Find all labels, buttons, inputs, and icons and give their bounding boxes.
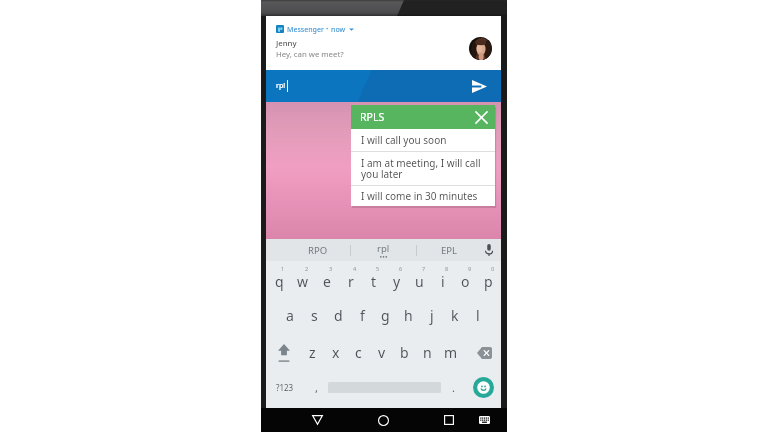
button[interactable]	[328, 369, 441, 406]
staticText: h	[404, 306, 413, 325]
staticText: q	[275, 272, 284, 291]
staticText: z	[309, 343, 316, 362]
staticText: 2	[305, 265, 309, 272]
staticText: u	[415, 272, 424, 291]
button[interactable]: 7	[408, 261, 431, 297]
staticText: x	[332, 343, 340, 362]
button[interactable]: Switch keyboard	[466, 408, 502, 432]
staticText: v	[378, 343, 386, 362]
button[interactable]: a	[278, 297, 302, 334]
staticText: a	[286, 306, 294, 325]
staticText: ,	[315, 380, 318, 395]
button[interactable]: ,	[304, 369, 328, 406]
staticText: w	[297, 272, 309, 291]
staticText: r	[348, 272, 354, 291]
staticText: 8	[445, 265, 449, 272]
button[interactable]: s	[302, 297, 326, 334]
button[interactable]: Messenger	[266, 16, 501, 70]
button[interactable]: rpl	[266, 70, 501, 102]
staticText: 4	[353, 265, 357, 272]
staticText: .	[452, 380, 455, 395]
button[interactable]: 2	[291, 261, 315, 297]
staticText: m	[444, 343, 458, 362]
staticText: Hey, can we meet?	[276, 49, 344, 60]
staticText: RPLS	[360, 110, 385, 124]
button[interactable]: RPO	[292, 239, 344, 261]
staticText: i	[441, 272, 445, 291]
button[interactable]: 3	[315, 261, 339, 297]
staticText: I will come in 30 minutes	[361, 189, 478, 203]
button[interactable]: 1	[267, 261, 291, 297]
staticText: 7	[422, 265, 426, 272]
button[interactable]: z	[301, 334, 324, 371]
button[interactable]: ?123	[266, 369, 304, 406]
staticText: c	[355, 343, 362, 362]
button[interactable]: rpl	[357, 239, 409, 261]
button[interactable]: j	[420, 297, 443, 334]
staticText: y	[393, 272, 401, 291]
staticText: n	[423, 343, 432, 362]
button[interactable]: EPL	[423, 239, 475, 261]
staticText: g	[381, 306, 390, 325]
staticText: Messenger	[287, 24, 324, 34]
staticText: s	[311, 306, 318, 325]
button[interactable]: Back	[293, 408, 341, 432]
staticText: 6	[399, 265, 403, 272]
button[interactable]: I am at meeting, I will call you later	[351, 152, 495, 185]
button[interactable]: 6	[385, 261, 408, 297]
button[interactable]: Emoji	[465, 369, 501, 406]
button[interactable]: Home	[359, 408, 407, 432]
staticText: b	[400, 343, 409, 362]
button[interactable]: 5	[362, 261, 385, 297]
staticText: I am at meeting, I will call you later	[361, 156, 489, 181]
button[interactable]: x	[324, 334, 347, 371]
staticText: RPO	[308, 244, 328, 257]
staticText: j	[430, 306, 434, 325]
staticText: I will call you soon	[361, 133, 447, 147]
staticText: p	[484, 272, 493, 291]
staticText: k	[451, 306, 459, 325]
button[interactable]: 8	[431, 261, 454, 297]
button[interactable]: Recents	[425, 408, 473, 432]
staticText: o	[461, 272, 470, 291]
staticText: 1	[281, 265, 285, 272]
button[interactable]: I will come in 30 minutes	[351, 186, 495, 206]
staticText: •	[326, 25, 329, 33]
staticText: f	[360, 306, 365, 325]
staticText: l	[476, 306, 480, 325]
button[interactable]: Backspace	[462, 334, 501, 371]
staticText: now	[331, 24, 346, 34]
button[interactable]: .	[441, 369, 465, 406]
staticText: ?123	[276, 382, 294, 393]
staticText: t	[371, 272, 377, 291]
button[interactable]: Shift	[266, 334, 301, 371]
button[interactable]: m	[439, 334, 462, 371]
button[interactable]: I will call you soon	[351, 129, 495, 151]
staticText: rpl	[276, 81, 286, 91]
staticText: 0	[491, 265, 495, 272]
staticText: Jenny	[276, 38, 297, 49]
button[interactable]: Voice input	[477, 239, 501, 261]
staticText: rpl	[377, 242, 390, 255]
staticText: e	[323, 272, 331, 291]
button[interactable]: c	[347, 334, 370, 371]
staticText: d	[334, 306, 343, 325]
staticText: 9	[468, 265, 472, 272]
button[interactable]: h	[397, 297, 420, 334]
button[interactable]: l	[466, 297, 489, 334]
button[interactable]: Send	[472, 80, 487, 93]
button[interactable]: n	[416, 334, 439, 371]
staticText: EPL	[441, 244, 458, 257]
button[interactable]: Close	[471, 107, 491, 127]
staticText: 3	[329, 265, 333, 272]
button[interactable]: 0	[477, 261, 500, 297]
button[interactable]: b	[393, 334, 416, 371]
button[interactable]: d	[326, 297, 350, 334]
button[interactable]: f	[350, 297, 374, 334]
button[interactable]: v	[370, 334, 393, 371]
button[interactable]: g	[374, 297, 397, 334]
button[interactable]: 4	[339, 261, 362, 297]
staticText: 5	[376, 265, 380, 272]
button[interactable]: k	[443, 297, 466, 334]
button[interactable]: 9	[454, 261, 477, 297]
